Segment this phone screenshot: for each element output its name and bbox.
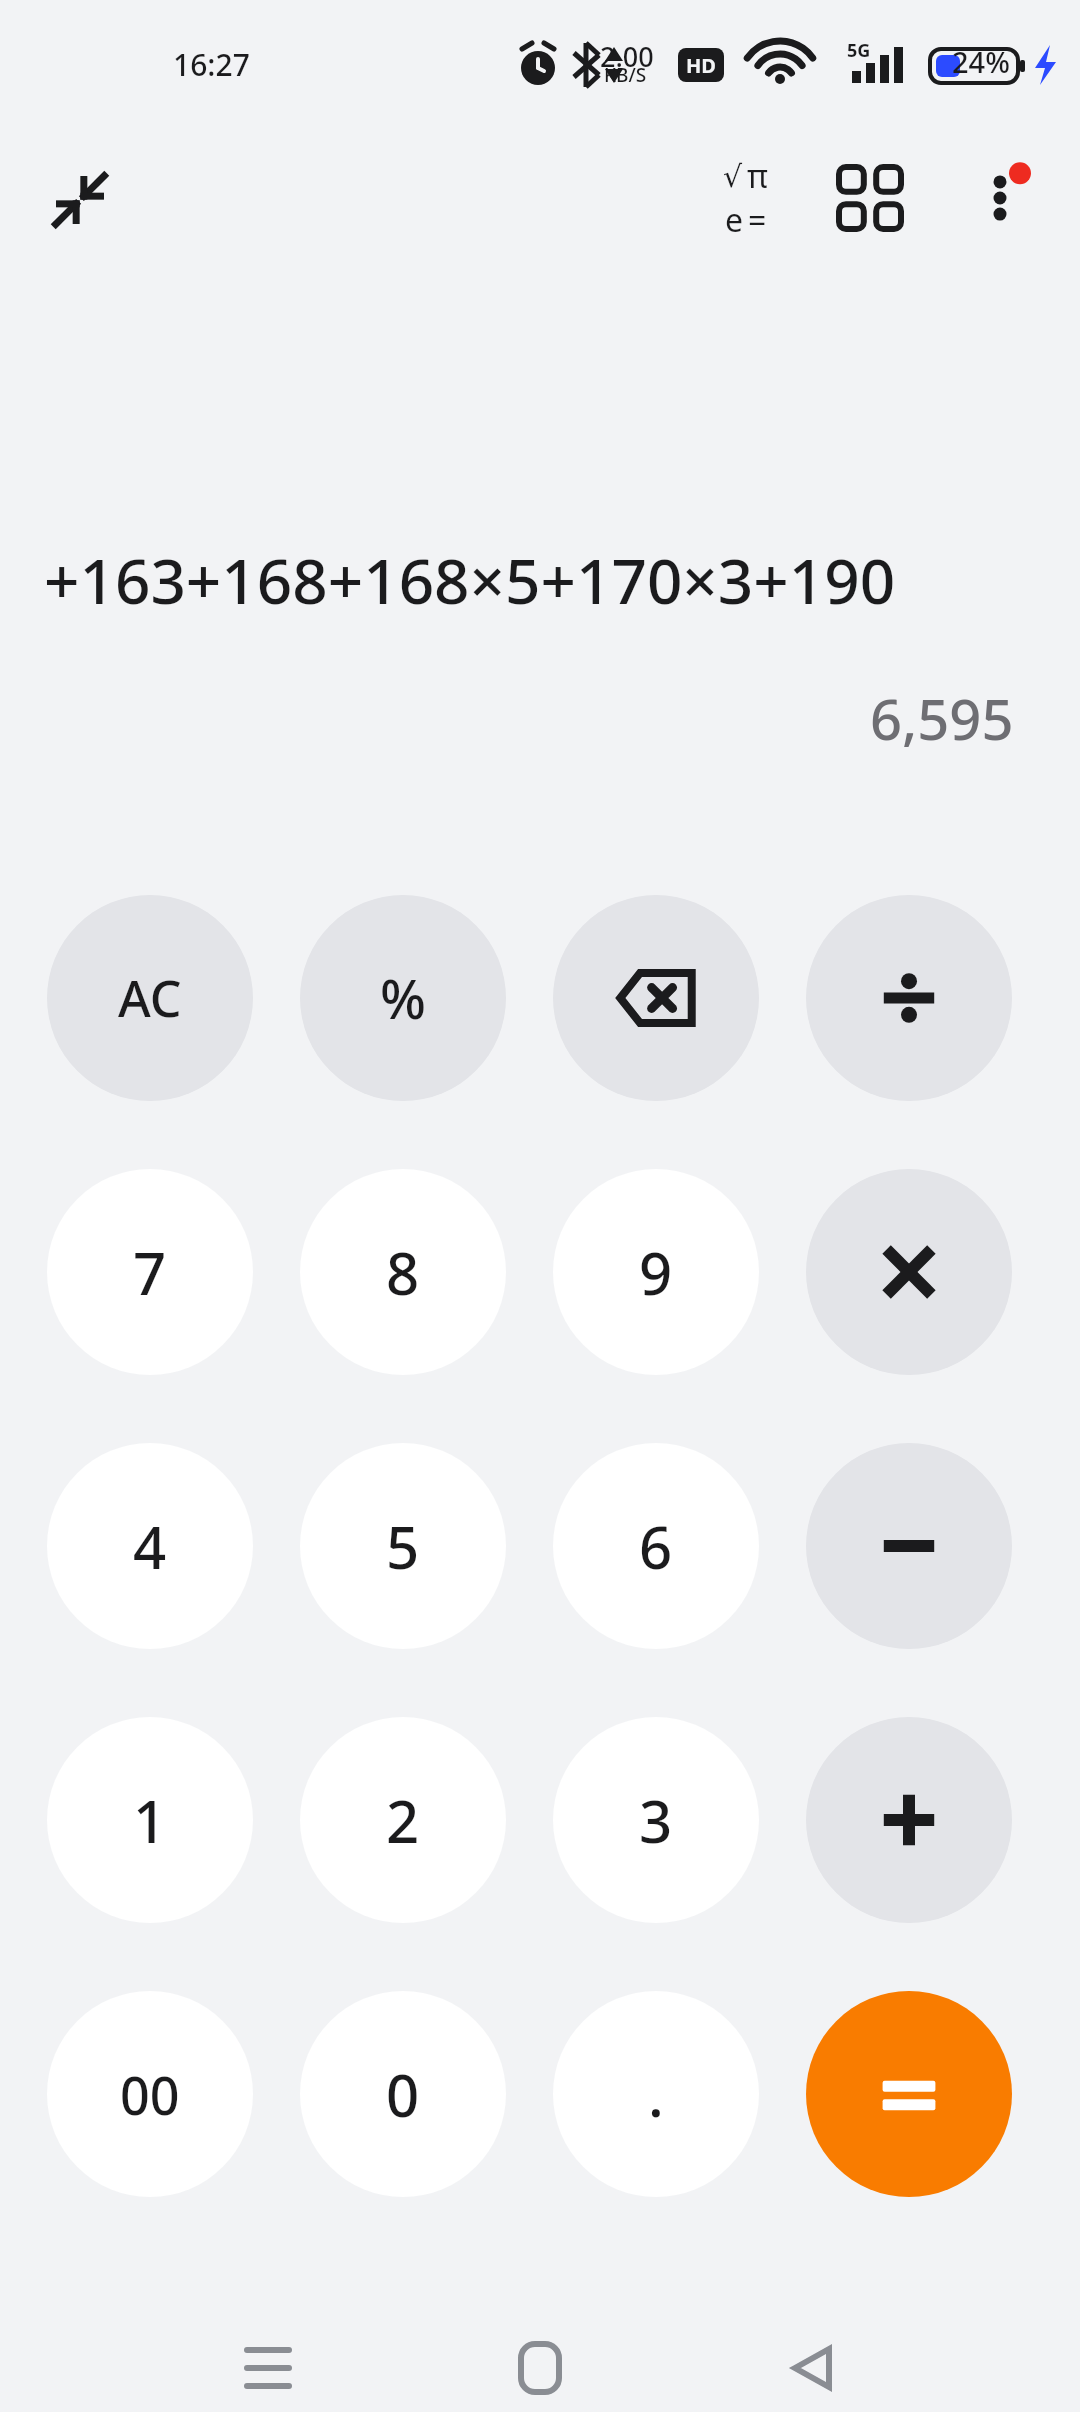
staticText: π (747, 154, 768, 198)
staticText: 5 (386, 1507, 420, 1586)
button[interactable]: 7 (47, 1169, 253, 1375)
button[interactable] (806, 1717, 1012, 1923)
button[interactable]: Back (762, 2318, 862, 2412)
button[interactable]: Collapse (30, 150, 130, 250)
staticText: e (725, 198, 744, 242)
staticText: KB/S (604, 62, 647, 88)
staticText: 6,595 (870, 680, 1014, 756)
staticText: 8 (386, 1233, 420, 1312)
button[interactable] (806, 1443, 1012, 1649)
button[interactable]: 4 (47, 1443, 253, 1649)
staticText: % (380, 961, 427, 1035)
staticText: AC (118, 964, 182, 1032)
staticText: 16:27 (173, 44, 250, 85)
button[interactable]: AC (47, 895, 253, 1101)
button[interactable]: 5 (300, 1443, 506, 1649)
button[interactable]: 2 (300, 1717, 506, 1923)
staticText: 7 (133, 1233, 167, 1312)
staticText: 00 (120, 2059, 180, 2130)
staticText: 9 (639, 1233, 673, 1312)
button[interactable]: 0 (300, 1991, 506, 2197)
button[interactable]: Recents (218, 2318, 318, 2412)
staticText: 24% (952, 42, 1010, 81)
button[interactable] (806, 1169, 1012, 1375)
button[interactable]: Home (490, 2318, 590, 2412)
staticText: 6 (639, 1507, 673, 1586)
staticText: . (648, 2055, 664, 2134)
button[interactable]: . (553, 1991, 759, 2197)
button[interactable]: % (300, 895, 506, 1101)
staticText: = (748, 198, 767, 242)
button[interactable]: 8 (300, 1169, 506, 1375)
staticText: 2.00 (600, 38, 654, 75)
button[interactable]: 1 (47, 1717, 253, 1923)
button[interactable]: 3 (553, 1717, 759, 1923)
button[interactable] (806, 895, 1012, 1101)
button[interactable] (806, 1991, 1012, 2197)
staticText: 1 (133, 1781, 167, 1860)
staticText: 3 (639, 1781, 673, 1860)
staticText: 2 (386, 1781, 420, 1860)
staticText: 5G (847, 38, 871, 63)
staticText: √ (723, 159, 743, 194)
button[interactable]: Backspace (553, 895, 759, 1101)
button[interactable]: 9 (553, 1169, 759, 1375)
button[interactable]: 6 (553, 1443, 759, 1649)
staticText: +163+168+168×5+170×3+190 (44, 538, 896, 622)
button[interactable]: Unit converter (820, 148, 920, 248)
button[interactable]: More options (950, 148, 1050, 248)
staticText: 4 (133, 1507, 167, 1586)
button[interactable]: Scientific mode (690, 148, 800, 248)
staticText: HD (686, 52, 716, 79)
button[interactable]: 00 (47, 1991, 253, 2197)
staticText: 0 (386, 2055, 420, 2134)
